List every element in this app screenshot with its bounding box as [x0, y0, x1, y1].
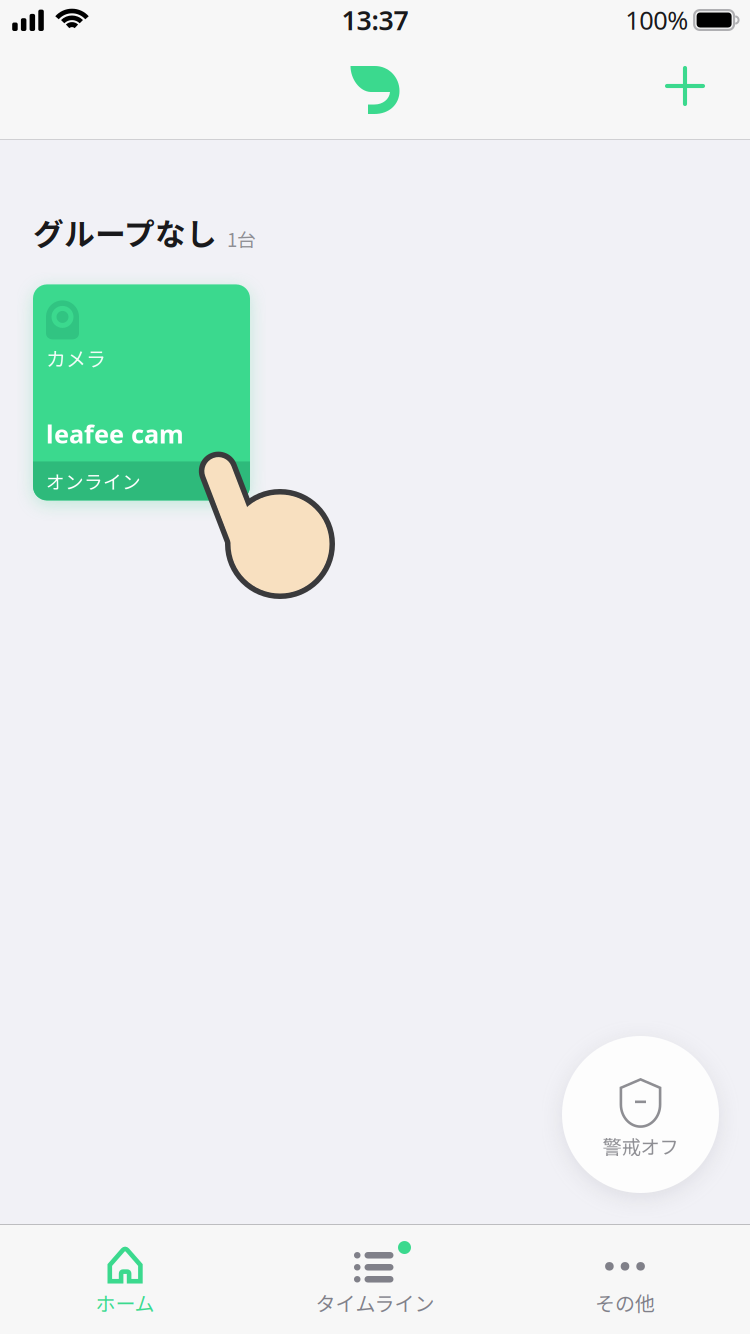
button[interactable]: カメラ — [33, 284, 250, 500]
staticText: ホーム — [95, 1288, 154, 1317]
button[interactable]: タイムライン — [250, 1229, 500, 1329]
staticText: 13:37 — [341, 2, 408, 38]
staticText: 警戒オフ — [602, 1132, 678, 1160]
button[interactable]: 警戒オフ — [562, 1036, 719, 1193]
staticText: カメラ — [46, 343, 106, 372]
button[interactable]: ホーム — [0, 1229, 250, 1329]
staticText: 1台 — [227, 225, 256, 252]
staticText: タイムライン — [315, 1288, 434, 1317]
staticText: その他 — [595, 1288, 655, 1317]
button[interactable]: 追加 — [645, 50, 725, 130]
staticText: グループなし — [33, 210, 217, 254]
button[interactable]: その他 — [500, 1229, 750, 1329]
staticText: オンライン — [46, 467, 141, 494]
staticText: 100% — [625, 3, 688, 37]
staticText: leafee cam — [46, 417, 184, 450]
